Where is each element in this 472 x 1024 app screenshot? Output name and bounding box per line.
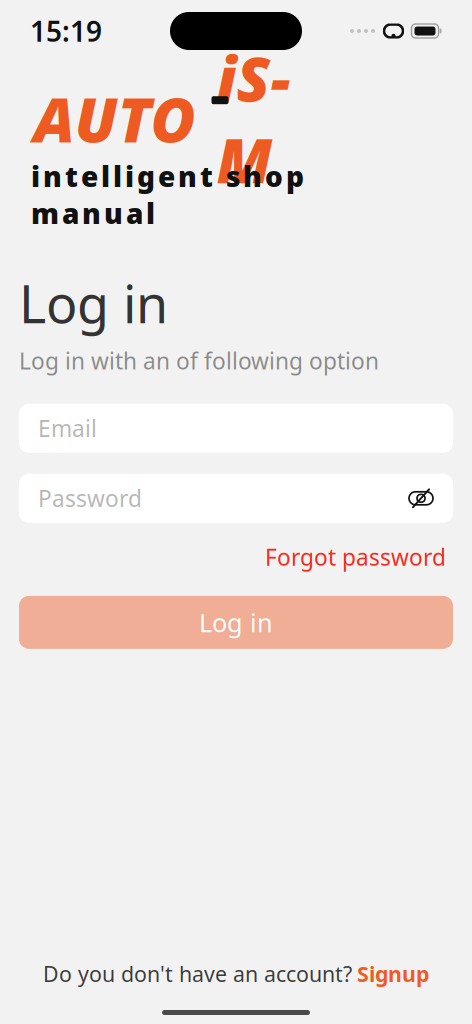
button[interactable]: Log in [19,596,453,649]
staticText: Do you don't have an account? [43,960,352,988]
button[interactable]: Forgot password [265,538,446,576]
staticText: Email [38,413,97,443]
staticText: iSM [216,37,290,200]
button[interactable]: Show password [408,485,434,511]
staticText: Log in with an of following option [19,346,379,376]
button[interactable]: Do you don't have an account? [43,960,429,988]
staticText: Log in [199,606,273,639]
staticText: Signup [357,960,429,988]
staticText: 15:19 [30,12,102,50]
staticText: Password [38,483,142,513]
staticText: AUTO [33,78,195,159]
staticText: Log in [19,269,168,338]
staticText: intelligent shop manual [31,157,304,232]
staticText: Forgot password [265,542,446,572]
